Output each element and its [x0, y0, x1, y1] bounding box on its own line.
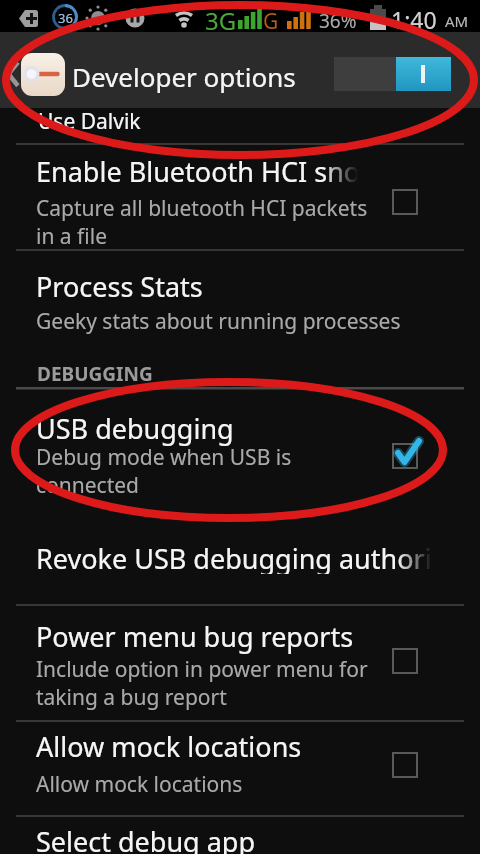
staticText: 1:40 — [391, 4, 437, 35]
button[interactable]: Process Stats — [0, 249, 480, 352]
staticText: Developer options — [72, 59, 296, 94]
staticText: connected — [36, 471, 140, 500]
staticText: 36 — [58, 9, 73, 27]
staticText: Geeky stats about running processes — [36, 307, 401, 336]
staticText: Enable Bluetooth HCI snoop — [36, 153, 358, 187]
staticText: 3G — [205, 4, 237, 36]
button[interactable]: Use Dalvik — [0, 108, 480, 143]
staticText: Revoke USB debugging authorizat — [36, 540, 432, 574]
button[interactable] — [334, 57, 451, 91]
button[interactable]: Enable Bluetooth HCI snoop — [0, 143, 480, 249]
staticText: 36% — [319, 8, 357, 34]
staticText: DEBUGGING — [37, 361, 153, 387]
button[interactable]: USB debugging — [0, 389, 480, 529]
button[interactable]: Select debug app — [0, 815, 480, 854]
button[interactable]: Allow mock locations — [0, 720, 480, 815]
staticText: taking a bug report — [36, 683, 227, 712]
staticText: USB debugging — [36, 410, 234, 447]
button[interactable]: Revoke USB debugging authorizat — [0, 529, 480, 604]
staticText: Power menu bug reports — [36, 618, 354, 655]
staticText: Allow mock locations — [36, 728, 302, 765]
staticText: Use Dalvik — [38, 107, 141, 136]
staticText: Select debug app — [36, 823, 256, 854]
staticText: Include option in power menu for — [36, 655, 368, 684]
button[interactable]: Power menu bug reports — [0, 604, 480, 720]
staticText: Capture all bluetooth HCI packets — [36, 194, 368, 223]
staticText: in a file — [36, 222, 108, 251]
staticText: Debug mode when USB is — [36, 443, 292, 472]
staticText: Process Stats — [36, 268, 203, 305]
staticText: AM — [445, 11, 469, 31]
staticText: Allow mock locations — [36, 770, 243, 799]
staticText: G — [263, 7, 279, 36]
